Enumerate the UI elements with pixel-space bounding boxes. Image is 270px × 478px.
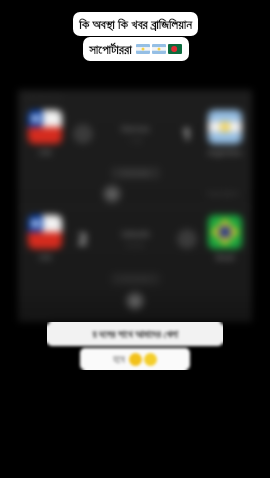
staticText: য় দলের সাথে আমাদের খেলা: [92, 327, 178, 341]
button[interactable]: সাপোর্টাররা: [83, 37, 189, 61]
button[interactable]: Expand match details: [103, 185, 121, 203]
button[interactable]: হবে: [80, 348, 190, 370]
staticText: Argentina: [208, 148, 242, 158]
button[interactable]: CHI: [18, 103, 252, 165]
button[interactable]: CHI: [28, 215, 62, 263]
button[interactable]: Finalizado: [111, 167, 160, 179]
staticText: Viernes: [120, 123, 150, 134]
button[interactable]: CHI: [18, 208, 252, 270]
staticText: কি অবস্থা কি খবর ব্রাজিলিয়ান: [79, 15, 192, 33]
button[interactable]: কি অবস্থা কি খবর ব্রাজিলিয়ান: [73, 12, 198, 36]
staticText: CHI: [39, 148, 52, 158]
button[interactable]: Team badge: [177, 229, 197, 249]
button[interactable]: Team badge: [73, 124, 93, 144]
staticText: 2: [78, 228, 88, 250]
button[interactable]: Argentina: [208, 110, 242, 158]
staticText: Brasil: [216, 253, 235, 263]
staticText: সাপোর্টাররা: [89, 40, 135, 58]
button[interactable]: Brasil: [208, 215, 242, 263]
button[interactable]: CHI: [28, 110, 62, 158]
button[interactable]: য় দলের সাথে আমাদের খেলা: [47, 322, 223, 346]
staticText: Sabado: [121, 228, 150, 239]
button[interactable]: Expand match details: [126, 292, 144, 310]
staticText: CHI: [39, 253, 52, 263]
staticText: 1: [182, 123, 192, 145]
staticText: হবে: [113, 352, 128, 366]
